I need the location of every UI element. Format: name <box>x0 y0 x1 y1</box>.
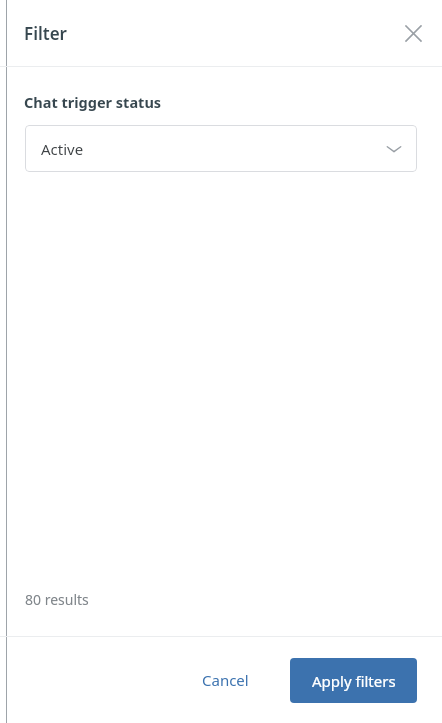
staticText: Apply filters <box>312 671 396 691</box>
staticText: Chat trigger status <box>24 92 162 112</box>
staticText: Cancel <box>202 670 249 690</box>
button[interactable]: Close <box>396 16 430 50</box>
button[interactable]: Cancel <box>190 660 261 700</box>
button[interactable]: Apply filters <box>290 658 417 703</box>
staticText: Active <box>41 139 84 159</box>
staticText: 80 results <box>25 590 89 609</box>
staticText: Filter <box>24 22 67 45</box>
button[interactable]: Active <box>25 125 417 172</box>
